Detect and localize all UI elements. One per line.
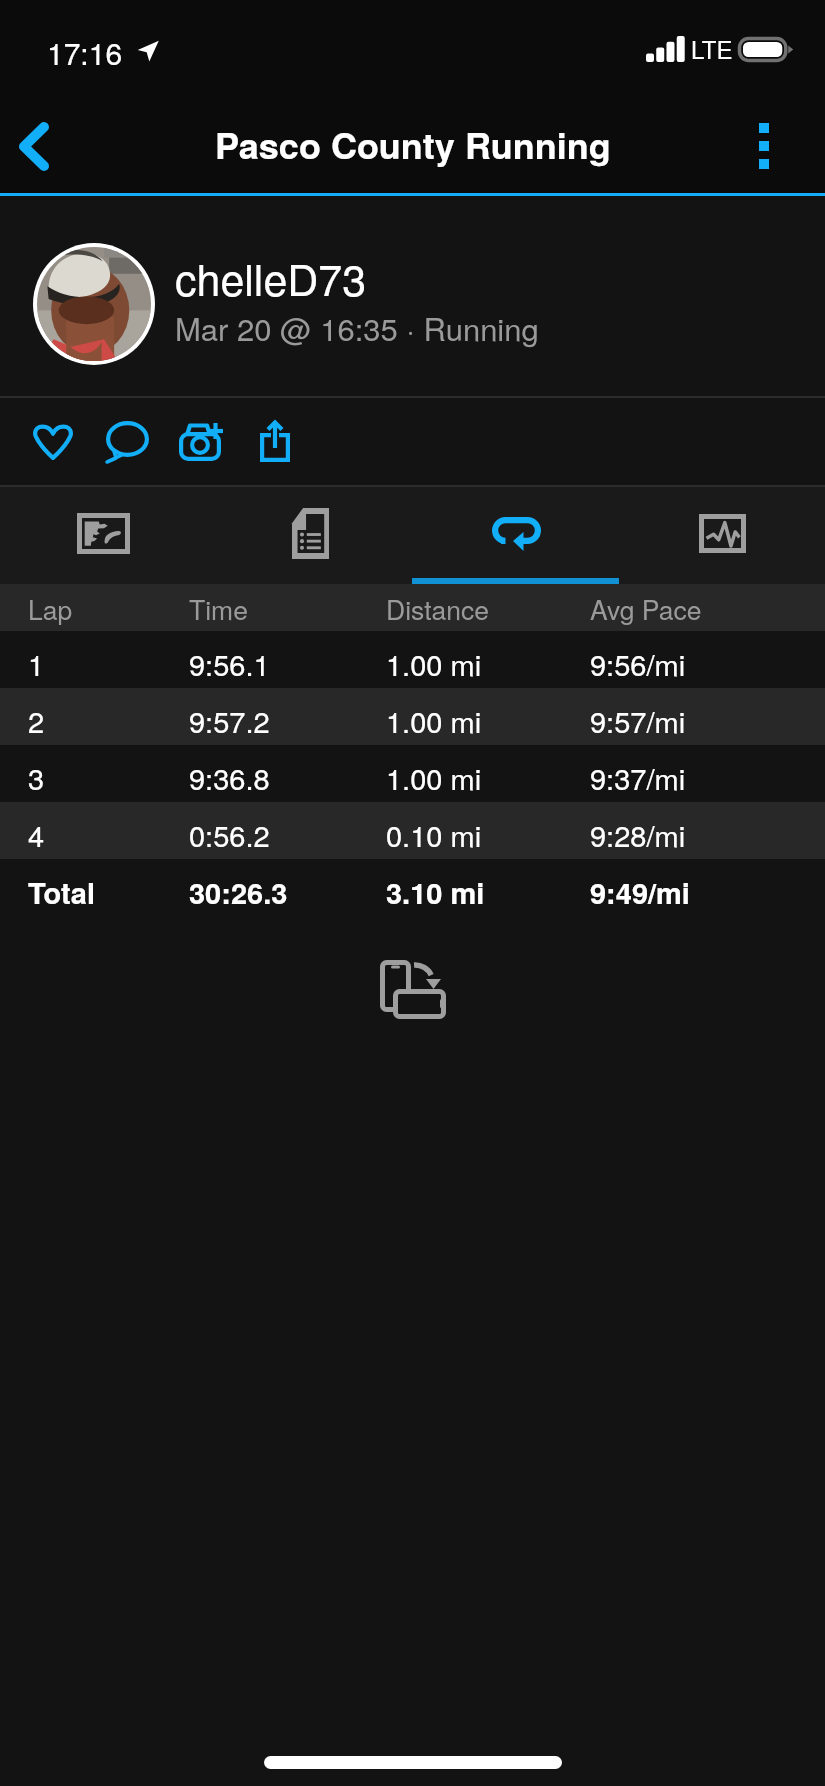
button[interactable]: 4 (0, 802, 825, 859)
button[interactable]: Comment (90, 398, 164, 485)
button[interactable]: Share (238, 398, 312, 485)
staticText: 2 (28, 700, 45, 742)
button[interactable]: 2 (0, 688, 825, 745)
staticText: 9:37/mi (590, 757, 686, 799)
staticText: 17:16 (47, 31, 123, 74)
staticText: Avg Pace (590, 590, 702, 628)
button[interactable]: chelleD73 (0, 196, 825, 396)
staticText: Mar 20 @ 16:35 · Running (175, 305, 539, 349)
staticText: 4 (28, 814, 45, 856)
staticText: 1.00 mi (386, 700, 482, 742)
staticText: Time (189, 590, 248, 628)
button[interactable]: Back (0, 96, 96, 196)
staticText: Total (28, 871, 95, 913)
staticText: LTE (691, 31, 733, 65)
staticText: 9:28/mi (590, 814, 686, 856)
button[interactable]: Add photo (164, 398, 238, 485)
button[interactable]: Total (0, 859, 825, 916)
staticText: 9:36.8 (189, 757, 270, 799)
staticText: 1.00 mi (386, 757, 482, 799)
button[interactable]: Splits (207, 487, 413, 584)
staticText: Distance (386, 590, 489, 628)
button[interactable]: 1 (0, 631, 825, 688)
staticText: 9:56/mi (590, 643, 686, 685)
button[interactable]: Laps (413, 487, 619, 584)
staticText: 30:26.3 (189, 871, 288, 913)
staticText: 0:56.2 (189, 814, 270, 856)
staticText: 0.10 mi (386, 814, 482, 856)
staticText: 1 (28, 643, 45, 685)
staticText: 9:57/mi (590, 700, 686, 742)
staticText: 9:49/mi (590, 871, 690, 913)
button[interactable]: Like (16, 398, 90, 485)
button[interactable]: Map (0, 487, 207, 584)
staticText: Lap (28, 590, 73, 628)
staticText: chelleD73 (175, 247, 367, 309)
staticText: 9:56.1 (189, 643, 270, 685)
button[interactable]: More options (729, 96, 825, 196)
staticText: 9:57.2 (189, 700, 270, 742)
staticText: 3.10 mi (386, 871, 485, 913)
button[interactable]: 3 (0, 745, 825, 802)
staticText: Pasco County Running (215, 118, 611, 170)
button[interactable]: Graphs (619, 487, 825, 584)
staticText: 3 (28, 757, 45, 799)
staticText: 1.00 mi (386, 643, 482, 685)
